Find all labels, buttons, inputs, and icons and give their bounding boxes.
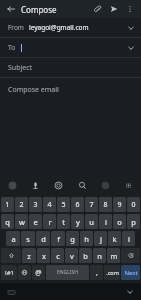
staticText: y xyxy=(76,217,80,227)
button[interactable]: 7 xyxy=(85,197,98,212)
button[interactable]: @ xyxy=(32,265,45,280)
button[interactable]: h xyxy=(80,231,93,246)
button[interactable]: y xyxy=(71,214,84,229)
staticText: To xyxy=(8,43,16,52)
button[interactable]: e xyxy=(29,214,42,229)
staticText: 5 xyxy=(61,200,66,210)
button[interactable]: c xyxy=(51,248,64,263)
button[interactable]: 5 xyxy=(57,197,70,212)
button[interactable]: 6 xyxy=(71,197,84,212)
staticText: h xyxy=(84,234,89,244)
button[interactable]: Expand xyxy=(125,22,136,33)
staticText: 6 xyxy=(75,200,80,210)
button[interactable]: Switch keyboard xyxy=(5,286,17,298)
staticText: b xyxy=(83,251,88,261)
button[interactable]: Search xyxy=(76,179,89,192)
staticText: e xyxy=(33,217,38,227)
button[interactable]: From xyxy=(0,18,141,38)
button[interactable]: 3 xyxy=(29,197,42,212)
staticText: m xyxy=(110,251,118,261)
staticText: i xyxy=(105,217,107,227)
button[interactable]: v xyxy=(65,248,78,263)
button[interactable]: 4 xyxy=(43,197,56,212)
staticText: 7 xyxy=(89,200,94,210)
button[interactable]: Voice input xyxy=(29,179,42,192)
button[interactable]: Translate xyxy=(99,179,112,192)
button[interactable]: 2 xyxy=(15,197,28,212)
button[interactable]: l xyxy=(122,231,135,246)
button[interactable]: Emoji xyxy=(6,179,19,192)
button[interactable]: Change language xyxy=(18,265,31,280)
staticText: g xyxy=(70,234,75,244)
button[interactable]: Subject xyxy=(0,58,141,78)
staticText: j xyxy=(100,234,102,244)
staticText: 4 xyxy=(47,200,52,210)
button[interactable]: Expand xyxy=(125,42,136,53)
button[interactable]: p xyxy=(127,214,140,229)
staticText: leyagoi@gmail.com xyxy=(29,23,89,32)
button[interactable]: o xyxy=(113,214,126,229)
button[interactable]: j xyxy=(94,231,107,246)
staticText: w xyxy=(19,217,25,227)
button[interactable]: u xyxy=(85,214,98,229)
staticText: p xyxy=(131,217,136,227)
staticText: Next xyxy=(124,269,138,277)
button[interactable]: t xyxy=(57,214,70,229)
button[interactable]: , xyxy=(90,265,103,280)
button[interactable]: 1 xyxy=(1,197,14,212)
button[interactable]: ENGLISH xyxy=(46,265,89,280)
staticText: ENGLISH xyxy=(57,269,78,276)
button[interactable]: b xyxy=(79,248,92,263)
button[interactable]: 0 xyxy=(127,197,140,212)
staticText: r xyxy=(48,217,52,227)
staticText: k xyxy=(112,234,117,244)
button[interactable]: 9 xyxy=(113,197,126,212)
staticText: @ xyxy=(35,268,42,278)
staticText: x xyxy=(42,251,46,261)
staticText: u xyxy=(89,217,94,227)
button[interactable]: .com xyxy=(104,265,120,280)
button[interactable]: m xyxy=(107,248,120,263)
button[interactable]: Next xyxy=(121,265,140,280)
button[interactable]: g xyxy=(66,231,79,246)
button[interactable]: f xyxy=(51,231,65,246)
staticText: Subject xyxy=(8,63,33,73)
staticText: !#1 xyxy=(5,269,14,277)
staticText: 3 xyxy=(33,200,38,210)
button[interactable]: x xyxy=(37,248,50,263)
staticText: 0 xyxy=(131,200,136,210)
staticText: a xyxy=(11,234,16,244)
staticText: 9 xyxy=(117,200,122,210)
button[interactable]: Stickers xyxy=(52,179,65,192)
staticText: .com xyxy=(106,269,119,276)
staticText: 2 xyxy=(19,200,24,210)
staticText: o xyxy=(117,217,122,227)
button[interactable]: d xyxy=(36,231,50,246)
button[interactable]: q xyxy=(1,214,14,229)
button[interactable]: k xyxy=(108,231,121,246)
button[interactable]: Shift xyxy=(1,248,21,263)
button[interactable]: a xyxy=(6,231,20,246)
staticText: t xyxy=(62,217,65,227)
button[interactable]: i xyxy=(99,214,112,229)
staticText: Compose email xyxy=(8,85,59,95)
button[interactable]: Back xyxy=(4,2,18,16)
button[interactable]: To xyxy=(0,38,141,58)
button[interactable]: Hide keyboard xyxy=(124,286,136,298)
button[interactable]: Compose email xyxy=(0,78,141,174)
button[interactable]: More xyxy=(122,179,135,192)
button[interactable]: !#1 xyxy=(1,265,17,280)
button[interactable]: More options xyxy=(123,2,137,16)
staticText: l xyxy=(128,234,130,244)
staticText: n xyxy=(97,251,102,261)
staticText: q xyxy=(5,217,10,227)
button[interactable]: z xyxy=(22,248,36,263)
button[interactable]: Attach file xyxy=(91,2,105,16)
button[interactable]: r xyxy=(43,214,56,229)
button[interactable]: s xyxy=(21,231,35,246)
button[interactable]: Backspace xyxy=(121,248,140,263)
button[interactable]: n xyxy=(93,248,106,263)
button[interactable]: Send xyxy=(107,2,121,16)
button[interactable]: 8 xyxy=(99,197,112,212)
button[interactable]: w xyxy=(15,214,28,229)
